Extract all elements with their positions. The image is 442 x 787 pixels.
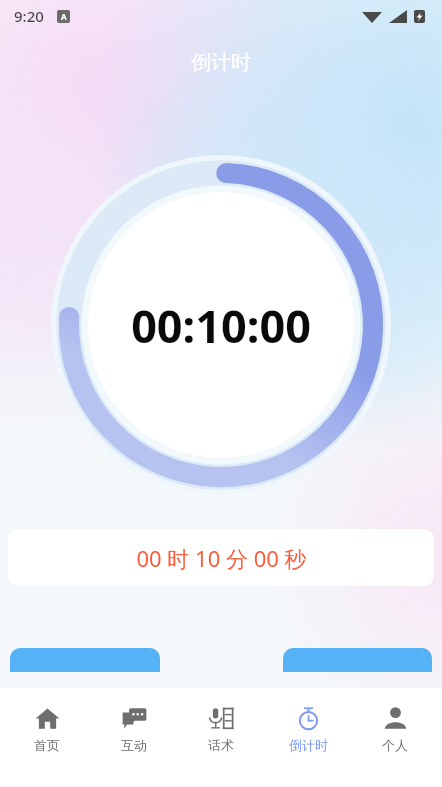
staticText: 9:20: [14, 6, 44, 26]
button[interactable]: 开始: [10, 648, 160, 672]
staticText: A: [61, 11, 67, 22]
button[interactable]: 首页: [7, 705, 87, 753]
staticText: 个人: [382, 737, 408, 753]
staticText: 00 时 10 分 00 秒: [136, 543, 307, 573]
staticText: 互动: [121, 737, 147, 753]
staticText: 首页: [34, 737, 60, 753]
button[interactable]: 00 时 10 分 00 秒: [8, 529, 434, 586]
staticText: 00:10:00: [131, 295, 311, 356]
staticText: 倒计时: [289, 737, 328, 753]
button[interactable]: 倒计时: [268, 705, 348, 753]
button[interactable]: 个人: [355, 705, 435, 753]
button[interactable]: 话术: [181, 705, 261, 753]
staticText: 倒计时: [0, 50, 442, 75]
button[interactable]: 重置: [283, 648, 432, 672]
button[interactable]: 互动: [94, 705, 174, 753]
staticText: 话术: [208, 737, 234, 753]
